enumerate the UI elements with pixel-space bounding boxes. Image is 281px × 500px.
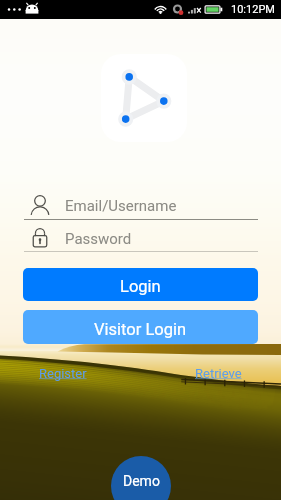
staticText: Password [65,230,132,248]
button[interactable]: Demo [111,456,171,500]
button[interactable]: Login [23,268,258,301]
staticText: Email/Username [65,197,177,215]
button[interactable]: Retrieve [195,366,242,381]
staticText: Demo [123,473,160,489]
staticText: 10:12PM [231,3,275,16]
button[interactable]: Register [39,366,87,381]
staticText: Login [120,277,161,296]
staticText: Visitor Login [94,320,187,339]
button[interactable]: Visitor Login [23,310,258,344]
